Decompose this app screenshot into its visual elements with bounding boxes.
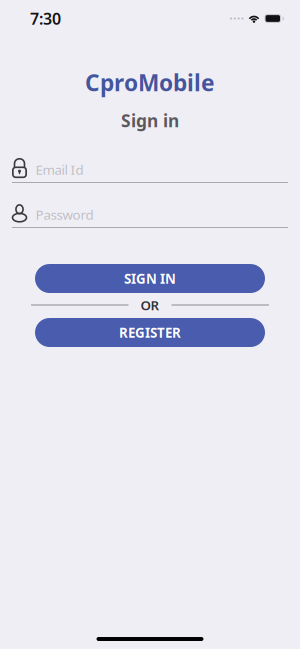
- staticText: REGISTER: [119, 324, 181, 341]
- staticText: SIGN IN: [124, 270, 176, 287]
- staticText: Password: [35, 206, 93, 223]
- button[interactable]: Email Id: [12, 157, 288, 183]
- button[interactable]: Password: [12, 202, 288, 228]
- staticText: OR: [140, 296, 159, 314]
- button[interactable]: SIGN IN: [35, 264, 265, 293]
- button[interactable]: REGISTER: [35, 318, 265, 347]
- staticText: Sign in: [121, 109, 179, 132]
- staticText: 7:30: [30, 8, 61, 29]
- staticText: CproMobile: [85, 67, 215, 97]
- staticText: Email Id: [35, 161, 83, 178]
